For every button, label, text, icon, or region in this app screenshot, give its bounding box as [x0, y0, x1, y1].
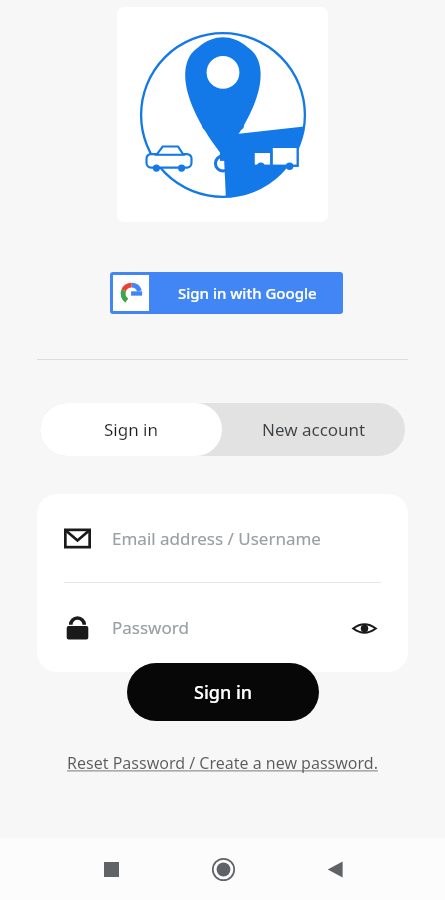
- button[interactable]: Back: [311, 845, 359, 893]
- staticText: Reset Password / Create a new password.: [67, 752, 378, 774]
- staticText: Sign in: [194, 680, 253, 705]
- button[interactable]: Show password: [347, 611, 381, 645]
- staticText: New account: [262, 418, 366, 441]
- staticText: Password: [112, 616, 347, 639]
- button[interactable]: Password: [64, 583, 381, 672]
- staticText: Email address / Username: [112, 527, 321, 550]
- staticText: Sign in: [104, 418, 158, 441]
- staticText: Sign in with Google: [178, 283, 317, 303]
- button[interactable]: Sign in with Google: [110, 272, 343, 314]
- button[interactable]: Recents: [87, 845, 135, 893]
- button[interactable]: New account: [222, 403, 405, 456]
- button[interactable]: Reset Password / Create a new password.: [61, 748, 384, 778]
- button[interactable]: Sign in: [127, 663, 319, 721]
- button[interactable]: Home: [199, 845, 247, 893]
- button[interactable]: Sign in: [40, 403, 222, 456]
- button[interactable]: Email address / Username: [64, 494, 381, 582]
